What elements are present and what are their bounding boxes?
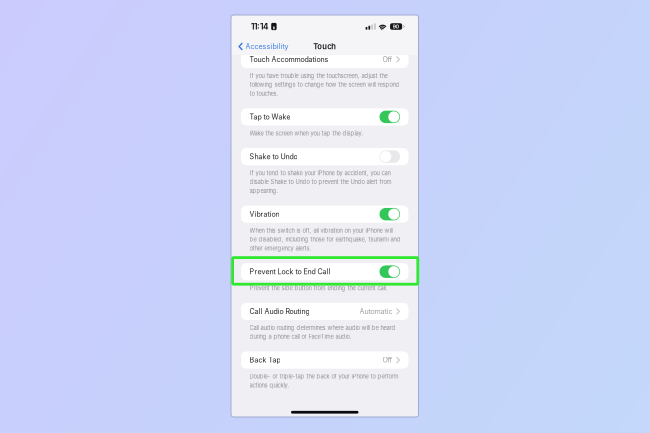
staticText: Call Audio Routing xyxy=(249,307,309,316)
staticText: other emergency alerts. xyxy=(250,245,312,252)
staticText: Call audio routing determines where audi… xyxy=(250,324,396,331)
staticText: Accessibility xyxy=(246,42,289,51)
staticText: to touches. xyxy=(250,90,279,97)
staticText: Shake to Undo xyxy=(249,152,297,161)
staticText: Touch xyxy=(313,42,336,51)
staticText: If you tend to shake your iPhone by acci… xyxy=(250,170,391,177)
staticText: Tap to Wake xyxy=(249,113,290,121)
staticText: Wake the screen when you tap the display… xyxy=(250,130,364,137)
staticText: during a phone call or FaceTime audio. xyxy=(250,333,352,340)
staticText: Vibration xyxy=(249,210,279,218)
button[interactable]: Prevent Lock to End Call xyxy=(241,263,408,280)
button[interactable]: Vibration xyxy=(241,206,408,223)
staticText: Double- or triple-tap the back of your i… xyxy=(250,373,399,380)
staticText: following settings to change how the scr… xyxy=(250,81,400,88)
button[interactable]: Touch Accommodations xyxy=(241,51,408,68)
button[interactable]: Shake to Undo xyxy=(241,148,408,165)
staticText: appearing. xyxy=(250,187,279,194)
staticText: 90 xyxy=(393,23,400,30)
staticText: If you have trouble using the touchscree… xyxy=(250,72,388,79)
staticText: be disabled, including those for earthqu… xyxy=(250,236,401,243)
staticText: Touch Accommodations xyxy=(249,55,328,64)
staticText: Prevent the side button from ending the … xyxy=(250,285,388,292)
staticText: Back Tap xyxy=(249,356,280,364)
staticText: Prevent Lock to End Call xyxy=(249,267,330,276)
staticText: 11:14 xyxy=(251,21,269,31)
staticText: actions quickly. xyxy=(250,382,290,389)
button[interactable]: Call Audio Routing xyxy=(241,303,408,320)
button[interactable]: Tap to Wake xyxy=(241,108,408,125)
button[interactable]: Back Tap xyxy=(241,351,408,369)
staticText: Off xyxy=(383,356,393,364)
staticText: disable Shake to Undo to prevent the Und… xyxy=(250,178,392,185)
staticText: When this switch is off, all vibration o… xyxy=(250,227,393,234)
button[interactable]: Accessibility xyxy=(231,38,289,55)
staticText: Automatic xyxy=(360,307,393,316)
staticText: Off xyxy=(383,55,393,64)
